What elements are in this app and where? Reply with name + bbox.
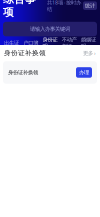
- staticText: 身份证补换领: [4, 49, 46, 57]
- button[interactable]: 请输入办事关键词: [3, 22, 97, 36]
- staticText: 户口簿: [23, 40, 38, 46]
- button[interactable]: 户口簿: [21, 40, 40, 46]
- button[interactable]: 出生证: [2, 40, 21, 46]
- staticText: 请输入办事关键词: [30, 26, 70, 32]
- staticText: 身份证补换领: [8, 69, 38, 76]
- button[interactable]: 身份证补换领: [3, 61, 97, 84]
- staticText: 不动产权证: [62, 36, 77, 49]
- staticText: 出生证: [4, 40, 19, 46]
- button[interactable]: 统计: [83, 1, 97, 10]
- staticText: 办理: [79, 69, 89, 76]
- staticText: 更多 ›: [83, 50, 96, 57]
- staticText: 共18项 · 按时办结: [47, 0, 81, 12]
- staticText: 综合事项: [3, 0, 36, 19]
- staticText: 统计: [85, 2, 95, 9]
- staticText: 婚姻证明: [81, 36, 96, 49]
- button[interactable]: 身份证明: [40, 36, 60, 49]
- button[interactable]: 婚姻证明: [79, 36, 98, 49]
- button[interactable]: 不动产权证: [60, 36, 79, 49]
- staticText: 身份证明: [42, 36, 57, 49]
- button[interactable]: 更多 ›: [83, 50, 96, 57]
